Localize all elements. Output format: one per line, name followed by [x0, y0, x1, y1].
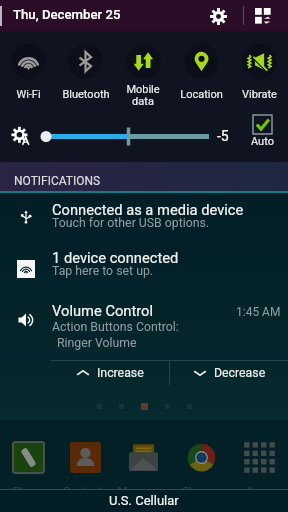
button[interactable]: Vibrate [230, 31, 288, 110]
button[interactable]: Phone [0, 438, 57, 498]
button[interactable]: Location [172, 31, 230, 110]
staticText: Contacts [63, 485, 108, 498]
staticText: Thu, December 25 [13, 7, 121, 22]
button[interactable]: Settings [206, 4, 230, 28]
button[interactable]: Volume Control [0, 300, 288, 358]
button[interactable]: Wi-Fi [0, 31, 57, 110]
staticText: U.S. Cellular [109, 493, 179, 508]
staticText: Vibrate [242, 88, 277, 101]
staticText: Mobile data [126, 83, 160, 108]
staticText: Apps [246, 485, 272, 498]
staticText: NOTIFICATIONS [14, 174, 101, 188]
staticText: Messages [118, 485, 169, 498]
button[interactable]: Messages [114, 438, 172, 498]
button[interactable]: Decrease [170, 361, 288, 385]
staticText: Volume Control [52, 302, 154, 319]
button[interactable]: Chrome [172, 438, 230, 498]
button[interactable]: Auto [245, 115, 279, 148]
staticText: Decrease [214, 366, 266, 380]
staticText: Increase [97, 366, 144, 380]
button[interactable]: Apps [230, 438, 288, 498]
staticText: Auto [251, 135, 274, 148]
staticText: Tap here to set up. [52, 264, 154, 278]
button[interactable]: Mobile data [114, 31, 172, 110]
staticText: Wi-Fi [16, 88, 41, 101]
staticText: Chrome [182, 485, 221, 498]
button[interactable]: Connected as a media device [0, 193, 288, 240]
button[interactable]: Bluetooth [57, 31, 114, 110]
button[interactable]: Contacts [57, 438, 114, 498]
button[interactable]: Edit quick settings [251, 4, 275, 28]
staticText: Touch for other USB options. [52, 216, 210, 230]
staticText: Phone [13, 485, 45, 498]
staticText: Ringer Volume [57, 336, 137, 350]
staticText: Action Buttons Control: [52, 320, 179, 334]
staticText: Bluetooth [62, 88, 110, 101]
button[interactable]: 1 device connected [0, 241, 288, 289]
button[interactable]: Increase [51, 361, 169, 385]
staticText: 1 device connected [52, 249, 179, 266]
staticText: -5 [217, 128, 229, 144]
staticText: 1:45 AM [236, 305, 281, 319]
staticText: Connected as a media device [52, 201, 244, 218]
staticText: Location [180, 88, 223, 101]
